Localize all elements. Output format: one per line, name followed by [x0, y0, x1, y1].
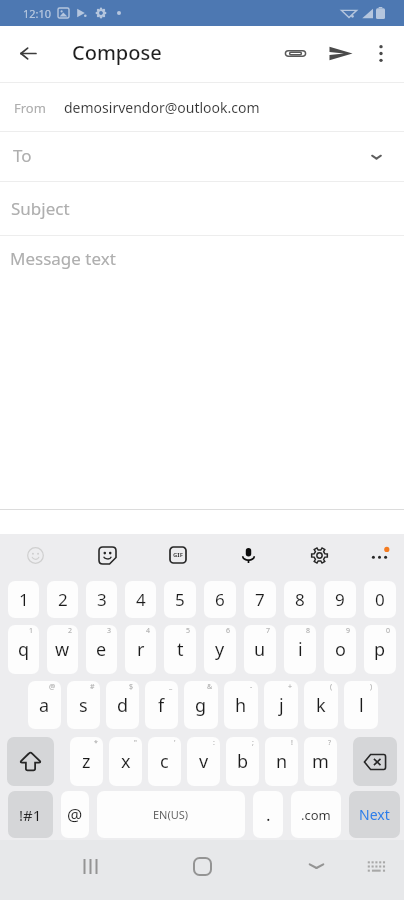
staticText: r	[137, 637, 145, 662]
button[interactable]: Attach file	[273, 31, 317, 75]
button[interactable]: Shift	[7, 737, 54, 786]
staticText: .	[266, 803, 271, 826]
staticText: 3	[97, 588, 107, 611]
button[interactable]: Message text	[0, 236, 404, 286]
button[interactable]: More options	[357, 534, 401, 576]
button[interactable]: 1	[8, 625, 39, 674]
staticText: a	[39, 693, 50, 718]
button[interactable]: !	[265, 737, 298, 786]
button[interactable]: 0	[364, 581, 396, 618]
button[interactable]: Emoji	[13, 534, 57, 576]
staticText: @	[67, 803, 83, 826]
staticText: Compose	[72, 39, 162, 66]
staticText: j	[279, 693, 284, 718]
button[interactable]: 5	[164, 625, 196, 674]
button[interactable]: 5	[164, 581, 196, 618]
button[interactable]: From	[0, 83, 404, 131]
button[interactable]: )	[344, 681, 378, 729]
staticText: 7	[266, 626, 271, 636]
staticText: 6	[226, 626, 231, 636]
button[interactable]: Voice input	[226, 534, 270, 576]
button[interactable]: 0	[364, 625, 396, 674]
button[interactable]: ;	[226, 737, 259, 786]
staticText: d	[117, 693, 129, 718]
button[interactable]: :	[187, 737, 220, 786]
staticText: 1	[19, 588, 29, 611]
button[interactable]: Keyboard settings	[297, 534, 341, 576]
staticText: g	[195, 693, 207, 718]
button[interactable]: 8	[284, 581, 316, 618]
staticText: q	[18, 637, 30, 662]
staticText: :	[213, 738, 215, 748]
button[interactable]: 3	[86, 581, 117, 618]
button[interactable]: To	[0, 132, 404, 181]
button[interactable]: @	[28, 681, 61, 729]
button[interactable]: Show CC and BCC	[362, 143, 390, 171]
staticText: y	[215, 637, 225, 662]
staticText: 0	[375, 588, 385, 611]
button[interactable]: 9	[324, 581, 356, 618]
staticText: EN(US)	[153, 807, 189, 822]
button[interactable]: #	[67, 681, 100, 729]
button[interactable]: Send	[319, 31, 363, 75]
button[interactable]: +	[264, 681, 298, 729]
button[interactable]: 2	[47, 581, 78, 618]
button[interactable]: '	[148, 737, 181, 786]
button[interactable]: "	[109, 737, 142, 786]
staticText: GIF	[173, 551, 183, 559]
button[interactable]: 6	[204, 581, 236, 618]
staticText: To	[13, 144, 32, 167]
staticText: &	[207, 682, 213, 692]
button[interactable]: Backspace	[353, 737, 397, 786]
staticText: 2	[58, 588, 68, 611]
button[interactable]: Subject	[0, 182, 404, 235]
button[interactable]: 8	[284, 625, 316, 674]
button[interactable]: Home	[180, 844, 224, 888]
button[interactable]: 2	[47, 625, 78, 674]
button[interactable]: 7	[244, 625, 276, 674]
button[interactable]: !#1	[8, 791, 53, 838]
button[interactable]: EN(US)	[97, 791, 245, 838]
staticText: l	[359, 693, 364, 718]
staticText: Next	[359, 805, 390, 824]
button[interactable]: _	[145, 681, 178, 729]
staticText: m	[312, 749, 329, 774]
button[interactable]: @	[61, 791, 89, 838]
staticText: *	[94, 738, 98, 748]
button[interactable]: ?	[304, 737, 337, 786]
button[interactable]: Recent apps	[68, 844, 112, 888]
button[interactable]: 6	[204, 625, 236, 674]
button[interactable]: (	[304, 681, 338, 729]
staticText: w	[55, 637, 70, 662]
button[interactable]: Next	[349, 791, 400, 838]
button[interactable]: -	[224, 681, 258, 729]
staticText: (	[330, 682, 333, 692]
staticText: 8	[306, 626, 311, 636]
button[interactable]: 9	[324, 625, 356, 674]
staticText: +	[288, 682, 293, 692]
button[interactable]: 4	[125, 581, 156, 618]
button[interactable]: 7	[244, 581, 276, 618]
button[interactable]: Change keyboard	[354, 844, 398, 888]
staticText: 12:10	[23, 6, 52, 21]
button[interactable]: .com	[291, 791, 341, 838]
staticText: c	[160, 749, 169, 774]
staticText: 9	[335, 588, 345, 611]
staticText: #	[90, 682, 95, 692]
button[interactable]: GIF	[156, 534, 200, 576]
button[interactable]: .	[253, 791, 283, 838]
button[interactable]: Back	[6, 31, 50, 75]
button[interactable]: Stickers	[85, 534, 129, 576]
staticText: demosirvendor@outlook.com	[64, 98, 260, 117]
button[interactable]: Hide keyboard	[294, 844, 338, 888]
staticText: x	[121, 749, 131, 774]
button[interactable]: 4	[125, 625, 156, 674]
button[interactable]: &	[184, 681, 218, 729]
button[interactable]: 1	[8, 581, 39, 618]
button[interactable]: $	[106, 681, 139, 729]
staticText: 3	[107, 626, 112, 636]
staticText: 5	[175, 588, 185, 611]
button[interactable]: *	[70, 737, 103, 786]
button[interactable]: More options	[360, 32, 402, 74]
button[interactable]: 3	[86, 625, 117, 674]
